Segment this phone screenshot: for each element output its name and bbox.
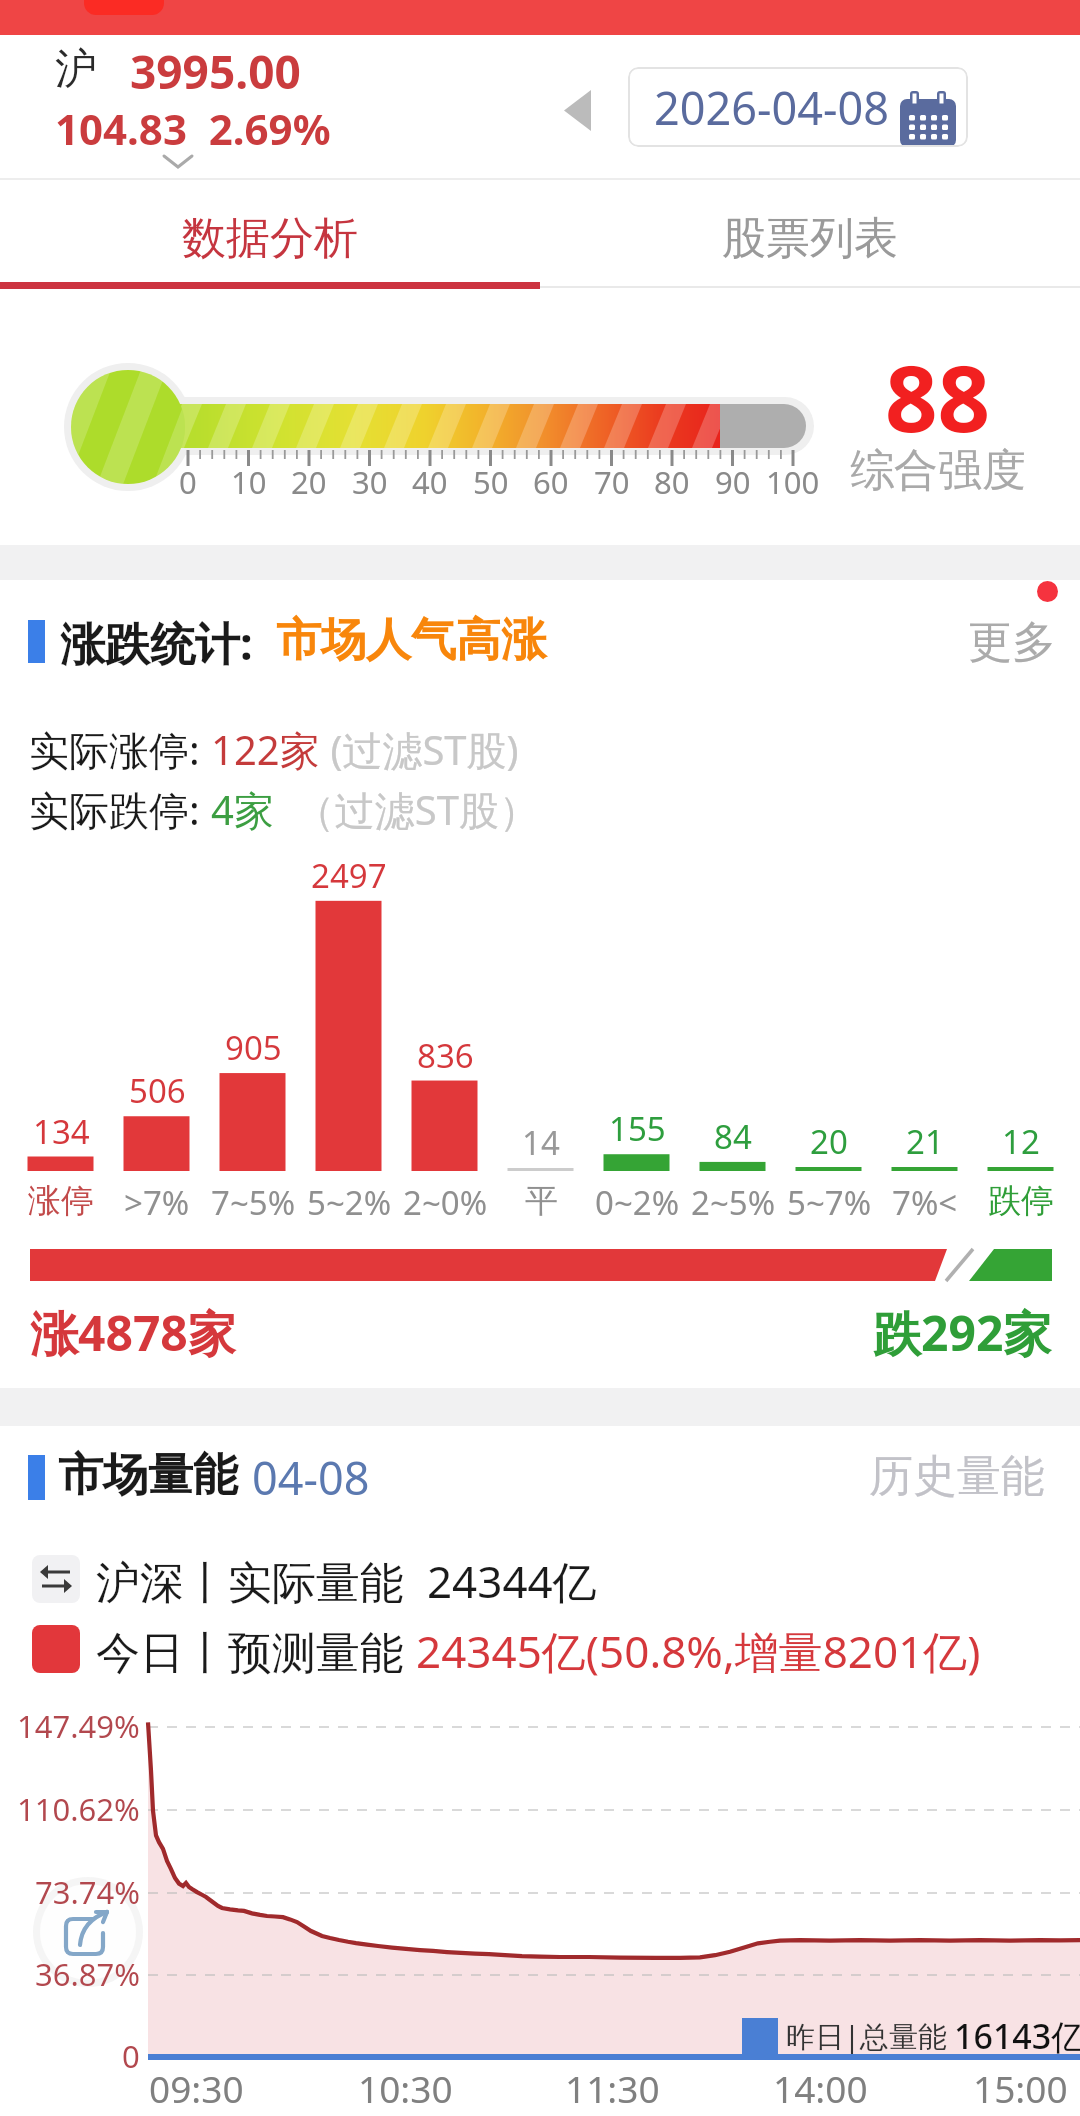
staticText: 2~5% — [691, 1180, 776, 1225]
staticText: 84 — [714, 1114, 752, 1159]
staticText: 实际涨停: — [29, 722, 211, 777]
staticText: 0~2% — [595, 1180, 680, 1225]
staticText: 16143亿 — [954, 2013, 1080, 2059]
staticText: 综合强度 — [850, 443, 1026, 498]
staticText: 2~0% — [403, 1180, 488, 1225]
staticText: 506 — [129, 1068, 186, 1113]
staticText: 7~5% — [211, 1180, 296, 1225]
staticText: 股票列表 — [722, 211, 898, 266]
staticText: 73.74% — [35, 1871, 140, 1913]
staticText: 3995.00 — [130, 40, 301, 103]
staticText: 20 — [291, 461, 327, 503]
staticText: 80 — [654, 461, 690, 503]
button[interactable]: 2026-04-08 — [628, 67, 968, 147]
staticText: 88 — [885, 334, 991, 459]
staticText: 市场人气高涨 — [276, 612, 546, 669]
staticText: 跌292家 — [873, 1300, 1052, 1366]
staticText: 涨4878家 — [30, 1300, 236, 1366]
staticText: 20 — [810, 1119, 848, 1164]
staticText: 沪 — [55, 43, 97, 96]
staticText: 110.62% — [17, 1788, 140, 1830]
staticText: 昨日|总量能 — [786, 2016, 947, 2056]
staticText: 21 — [906, 1119, 944, 1164]
button[interactable]: 股票列表 — [540, 178, 1080, 298]
staticText: 10 — [231, 461, 267, 503]
staticText: 0 — [122, 2035, 140, 2077]
staticText: 2026-04-08 — [654, 77, 889, 138]
staticText: 平 — [525, 1180, 558, 1222]
staticText: 涨停 — [28, 1180, 94, 1222]
staticText: 40 — [412, 461, 448, 503]
staticText: 104.83 2.69% — [55, 100, 331, 157]
staticText: 09:30 — [149, 2063, 244, 2113]
staticText: 60 — [533, 461, 569, 503]
button[interactable]: 更多 — [950, 600, 1060, 670]
staticText: 147.49% — [17, 1705, 140, 1747]
staticText: 14 — [522, 1120, 560, 1165]
staticText: 90 — [715, 461, 751, 503]
staticText: 100 — [766, 461, 820, 503]
staticText: 10:30 — [358, 2063, 453, 2113]
staticText: 14:00 — [773, 2063, 868, 2113]
staticText: 905 — [225, 1025, 282, 1070]
staticText: 12 — [1002, 1119, 1040, 1164]
button[interactable]: 历史量能 — [869, 1449, 1045, 1504]
staticText: 134 — [33, 1109, 90, 1154]
staticText: 836 — [417, 1033, 474, 1078]
staticText: 24345亿(50.8%,增量8201亿) — [416, 1621, 981, 1681]
staticText: 50 — [473, 461, 509, 503]
staticText: 今日丨预测量能 — [96, 1621, 416, 1681]
staticText: 涨跌统计: — [60, 612, 253, 673]
staticText: 30 — [352, 461, 388, 503]
staticText: 5~2% — [307, 1180, 392, 1225]
staticText: （过滤ST股） — [274, 782, 539, 837]
staticText: 跌停 — [988, 1180, 1054, 1222]
staticText: 15:00 — [973, 2063, 1068, 2113]
staticText: 2497 — [311, 853, 387, 898]
staticText: (过滤ST股) — [320, 722, 519, 777]
staticText: 更多 — [968, 615, 1056, 670]
staticText: 0 — [179, 461, 197, 503]
staticText: 5~7% — [787, 1180, 872, 1225]
staticText: 沪深丨实际量能 24344亿 — [96, 1551, 597, 1611]
staticText: 7%< — [892, 1180, 958, 1225]
staticText: 市场量能 — [58, 1447, 238, 1504]
staticText: 历史量能 — [869, 1449, 1045, 1504]
staticText: 36.87% — [35, 1953, 140, 1995]
staticText: 70 — [594, 461, 630, 503]
button[interactable]: 数据分析 — [0, 178, 540, 298]
staticText: 数据分析 — [182, 211, 358, 266]
staticText: 11:30 — [565, 2063, 660, 2113]
staticText: 实际跌停: — [29, 782, 211, 837]
staticText: 155 — [609, 1106, 666, 1151]
staticText: 122家 — [211, 722, 320, 777]
staticText: >7% — [124, 1180, 190, 1225]
staticText: 4家 — [211, 782, 274, 837]
button[interactable] — [40, 1884, 136, 1980]
staticText: 04-08 — [252, 1447, 370, 1508]
